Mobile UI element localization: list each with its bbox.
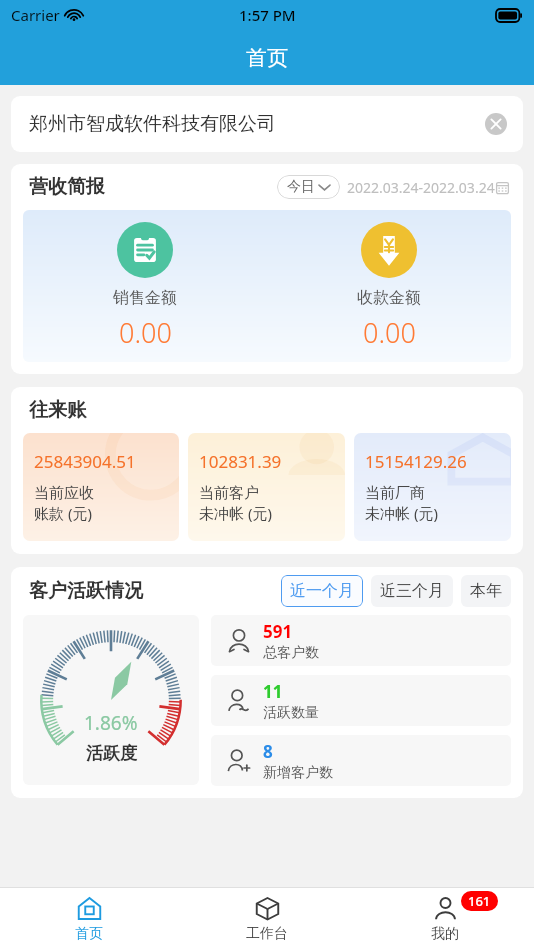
button[interactable]: 11 bbox=[211, 675, 511, 726]
staticText: 账款 (元) bbox=[34, 503, 92, 523]
button[interactable]: 102831.39 bbox=[188, 433, 345, 541]
staticText: 15154129.26 bbox=[365, 450, 467, 473]
staticText: 近三个月 bbox=[380, 581, 444, 601]
staticText: 当前应收 bbox=[34, 484, 94, 503]
staticText: 8 bbox=[263, 740, 273, 763]
staticText: 收款金额 bbox=[357, 288, 421, 308]
staticText: 1.86% bbox=[84, 710, 138, 736]
staticText: 首页 bbox=[75, 925, 103, 943]
button[interactable]: 15154129.26 bbox=[354, 433, 511, 541]
staticText: 近一个月 bbox=[290, 581, 354, 601]
staticText: 我的 bbox=[431, 925, 459, 943]
button[interactable]: 591 bbox=[211, 615, 511, 666]
staticText: 今日 bbox=[287, 178, 315, 196]
staticText: 客户活跃情况 bbox=[29, 579, 143, 603]
staticText: 郑州市智成软件科技有限公司 bbox=[29, 112, 276, 136]
staticText: 活跃数量 bbox=[263, 704, 319, 722]
staticText: 首页 bbox=[246, 45, 288, 71]
staticText: 未冲帐 (元) bbox=[365, 503, 438, 523]
staticText: 当前客户 bbox=[199, 484, 259, 503]
button[interactable]: 首页 bbox=[0, 888, 178, 950]
staticText: 591 bbox=[263, 620, 293, 643]
staticText: 销售金额 bbox=[113, 288, 177, 308]
staticText: 总客户数 bbox=[263, 644, 319, 662]
staticText: 0.00 bbox=[363, 314, 416, 351]
staticText: 活跃度 bbox=[86, 743, 137, 764]
button[interactable]: 今日 bbox=[277, 175, 340, 199]
button[interactable]: 我的 bbox=[356, 888, 534, 950]
staticText: 新增客户数 bbox=[263, 764, 333, 782]
staticText: 25843904.51 bbox=[34, 450, 136, 473]
staticText: 102831.39 bbox=[199, 450, 282, 473]
staticText: 1:57 PM bbox=[239, 5, 296, 25]
staticText: 本年 bbox=[470, 581, 502, 601]
button[interactable]: 8 bbox=[211, 735, 511, 786]
staticText: 未冲帐 (元) bbox=[199, 503, 272, 523]
button[interactable]: Clear bbox=[485, 113, 507, 135]
staticText: 往来账 bbox=[29, 398, 86, 422]
staticText: 0.00 bbox=[119, 314, 172, 351]
button[interactable]: 郑州市智成软件科技有限公司 bbox=[11, 96, 523, 152]
staticText: 2022.03.24-2022.03.24 bbox=[347, 178, 495, 197]
staticText: Carrier bbox=[11, 5, 60, 25]
staticText: 营收简报 bbox=[29, 175, 105, 199]
button[interactable]: 销售金额 bbox=[23, 222, 267, 351]
staticText: 当前厂商 bbox=[365, 484, 425, 503]
button[interactable]: 本年 bbox=[461, 575, 511, 607]
button[interactable]: 25843904.51 bbox=[23, 433, 179, 541]
button[interactable]: 收款金额 bbox=[267, 222, 511, 351]
button[interactable]: 工作台 bbox=[178, 888, 356, 950]
staticText: 161 bbox=[468, 892, 491, 910]
staticText: 11 bbox=[263, 680, 283, 703]
staticText: 工作台 bbox=[246, 925, 288, 943]
button[interactable]: 近一个月 bbox=[281, 575, 363, 607]
button[interactable]: 近三个月 bbox=[371, 575, 453, 607]
